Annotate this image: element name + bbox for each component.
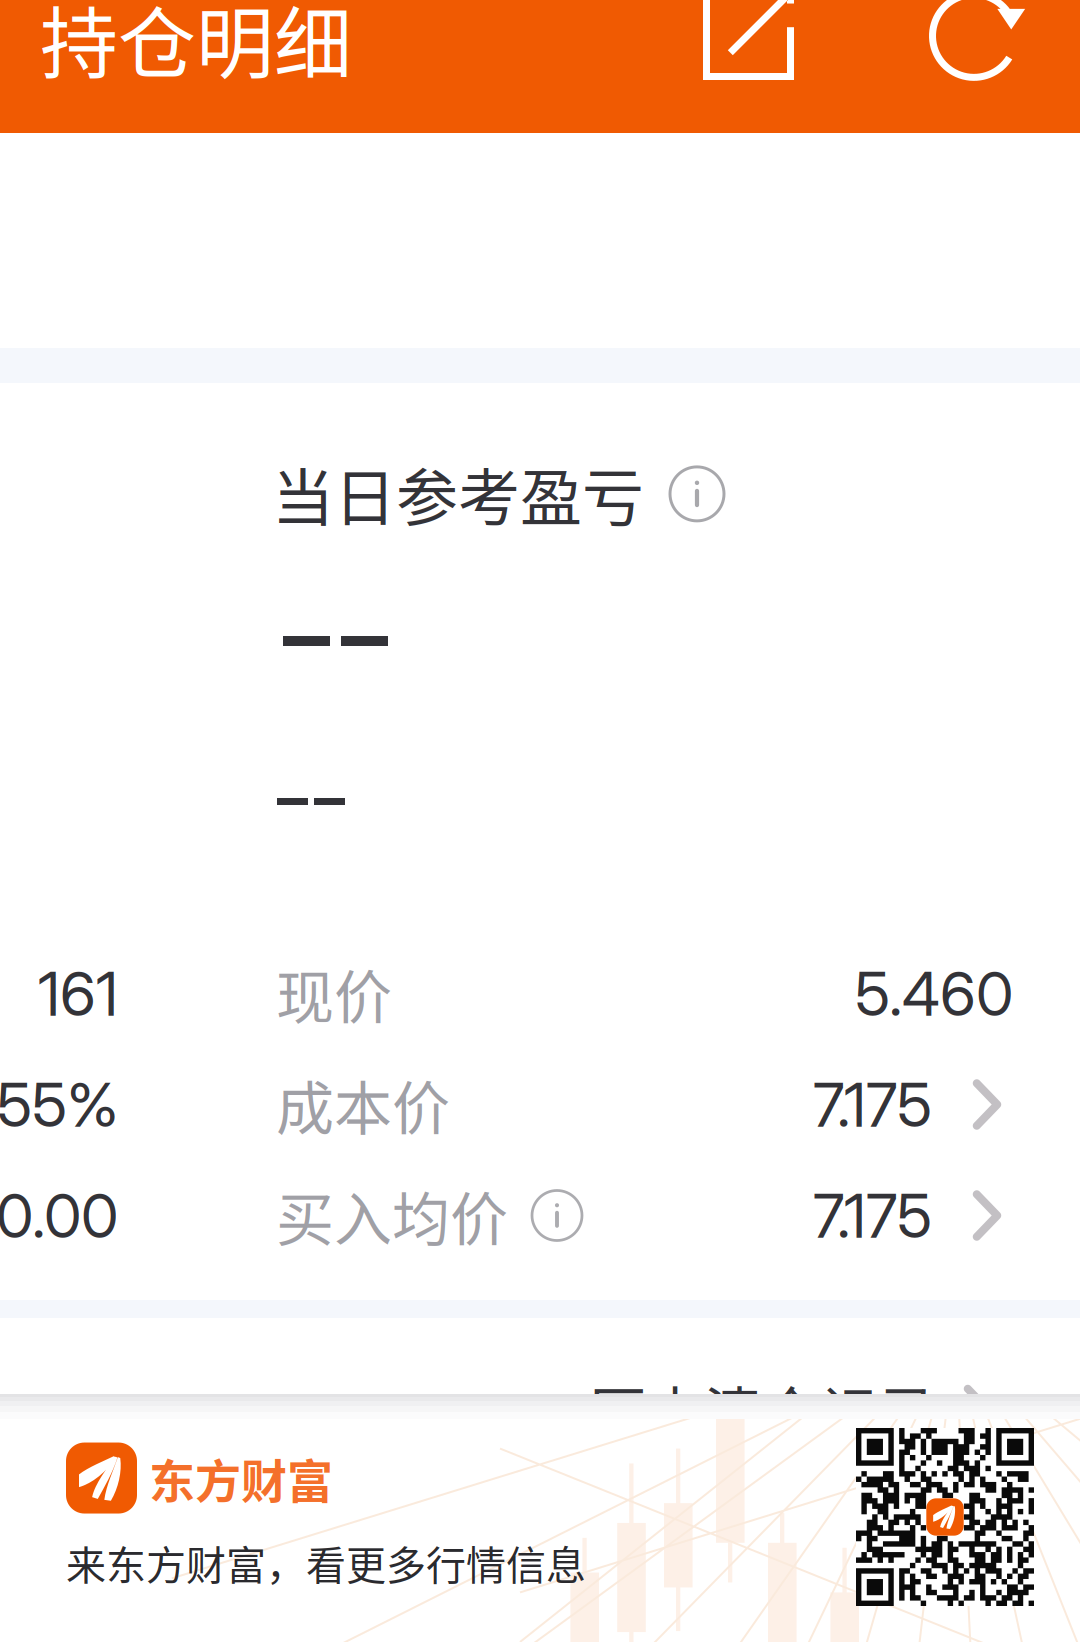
staticText: 0.00 xyxy=(0,1179,118,1252)
staticText: 55% xyxy=(0,1068,118,1141)
staticText: 7.175 xyxy=(813,1179,932,1252)
staticText: 161 xyxy=(38,957,118,1030)
staticText: 历史清仓记录 xyxy=(588,1368,936,1452)
staticText: 当日参考盈亏 xyxy=(272,449,644,539)
button[interactable]: 161 xyxy=(0,938,1080,1049)
staticText: 5.460 xyxy=(855,957,1013,1030)
staticText: 7.175 xyxy=(813,1068,932,1141)
button[interactable]: 55% xyxy=(0,1049,1080,1160)
staticText: 持仓明细 xyxy=(40,0,352,95)
staticText: 来东方财富，看更多行情信息 xyxy=(66,1533,586,1591)
staticText: 买入均价 xyxy=(276,1173,508,1257)
staticText: 成本价 xyxy=(276,1062,450,1146)
button[interactable]: 0.00 xyxy=(0,1160,1080,1271)
button[interactable]: 历史清仓记录 xyxy=(588,1368,994,1452)
button[interactable]: 刷新 xyxy=(929,0,1036,81)
staticText: 现价 xyxy=(276,951,392,1035)
button[interactable]: 分享 xyxy=(703,0,794,80)
staticText: 东方财富 xyxy=(149,1445,333,1511)
